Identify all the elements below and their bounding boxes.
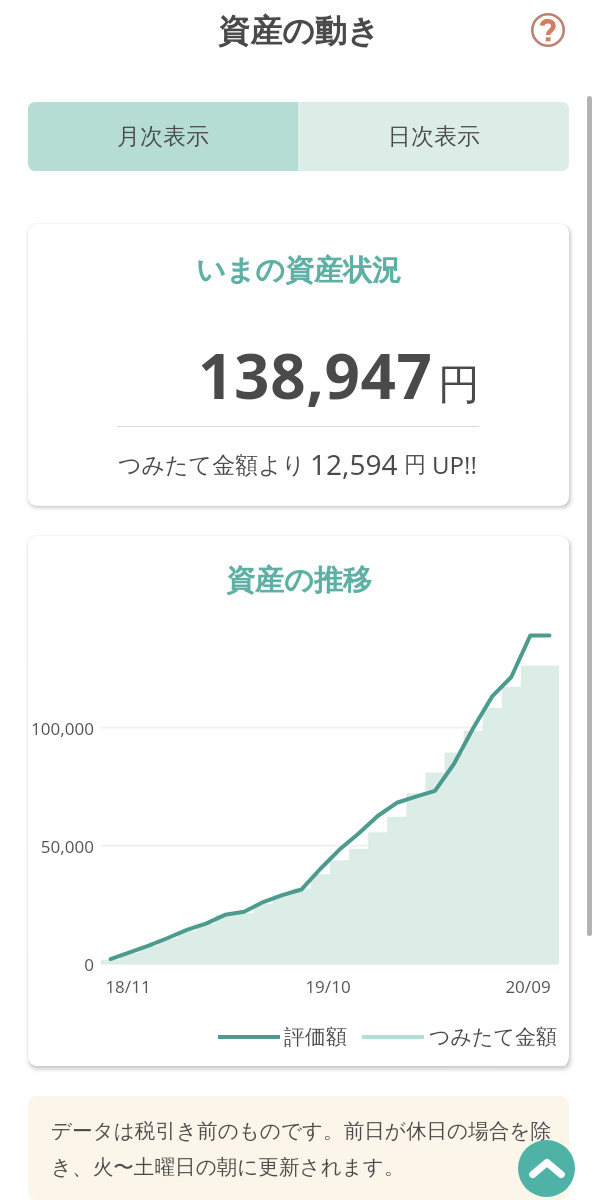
staticText: 月次表示: [117, 122, 209, 151]
staticText: 資産の動き: [218, 11, 380, 51]
staticText: 18/11: [88, 975, 168, 998]
staticText: 50,000: [28, 835, 94, 858]
staticText: 円: [404, 451, 426, 479]
staticText: 日次表示: [388, 122, 480, 151]
staticText: 12,594: [310, 445, 398, 483]
button[interactable]: Scroll to top: [518, 1140, 575, 1197]
button[interactable]: 月次表示: [28, 102, 298, 171]
staticText: 円: [438, 359, 480, 412]
staticText: 138,947: [198, 333, 433, 417]
staticText: データは税引き前のものです。前日が休日の場合を除き、火〜土曜日の朝に更新されます…: [51, 1118, 553, 1180]
button[interactable]: 日次表示: [298, 102, 569, 171]
staticText: つみたて金額より: [118, 451, 306, 480]
staticText: いまの資産状況: [196, 252, 402, 289]
button[interactable]: Help: [522, 4, 574, 56]
staticText: 評価額: [284, 1024, 347, 1050]
staticText: UP!!: [432, 448, 477, 481]
staticText: 19/10: [288, 975, 368, 998]
staticText: つみたて金額: [429, 1024, 557, 1050]
staticText: 100,000: [28, 717, 94, 740]
staticText: 0: [28, 953, 94, 976]
staticText: 20/09: [488, 975, 568, 998]
staticText: 資産の推移: [226, 562, 372, 599]
